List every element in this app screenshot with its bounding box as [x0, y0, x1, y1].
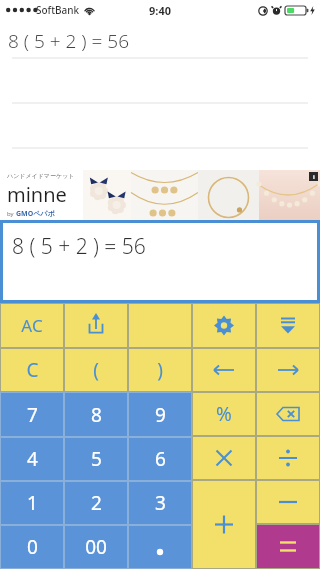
button[interactable]: Plus — [192, 480, 256, 569]
button[interactable]: 7 — [0, 392, 64, 437]
button[interactable]: 1 — [0, 481, 64, 525]
staticText: AC — [21, 314, 43, 337]
button[interactable]: Multiply — [192, 436, 256, 480]
button[interactable] — [128, 303, 192, 348]
button[interactable]: 5 — [64, 437, 128, 481]
staticText: SoftBank — [36, 3, 80, 17]
staticText: 1 — [27, 490, 38, 516]
staticText: i — [313, 173, 315, 181]
button[interactable]: ) — [128, 348, 192, 392]
button[interactable]: 4 — [0, 437, 64, 481]
button[interactable]: 6 — [128, 437, 192, 481]
button[interactable]: Left — [192, 348, 256, 392]
button[interactable]: 00 — [64, 525, 128, 569]
button[interactable]: 8 ( 5 + 2 ) = 56 — [3, 223, 317, 300]
button[interactable]: 2 — [64, 481, 128, 525]
staticText: 9 — [155, 402, 166, 428]
staticText: % — [216, 401, 232, 427]
button[interactable]: Divide — [256, 436, 320, 480]
button[interactable]: Hide keyboard — [256, 303, 320, 348]
button[interactable]: Share — [64, 303, 128, 348]
button[interactable]: AC — [0, 303, 64, 348]
button[interactable]: Right — [256, 348, 320, 392]
staticText: 6 — [155, 446, 166, 472]
button[interactable]: 0 — [0, 525, 64, 569]
button[interactable]: Settings — [192, 303, 256, 348]
button[interactable]: 8 — [64, 392, 128, 437]
button[interactable]: 3 — [128, 481, 192, 525]
staticText: 00 — [85, 534, 107, 560]
staticText: 9:40 — [149, 3, 171, 18]
button[interactable]: ( — [64, 348, 128, 392]
button[interactable]: Equals — [256, 524, 320, 569]
staticText: 3 — [155, 490, 166, 516]
staticText: 8 ( 5 + 2 ) = 56 — [8, 28, 130, 54]
staticText: C — [26, 357, 39, 383]
staticText: ) — [157, 357, 163, 383]
button[interactable]: % — [192, 392, 256, 436]
staticText: by — [7, 210, 16, 218]
button[interactable]: Minus — [256, 480, 320, 524]
staticText: ハンドメイドマーケット — [7, 172, 75, 180]
staticText: 0 — [27, 534, 38, 560]
button[interactable]: Decimal point — [128, 525, 192, 569]
staticText: GMOペパボ — [16, 209, 55, 219]
staticText: minne — [7, 181, 67, 208]
staticText: ( — [93, 357, 99, 383]
button[interactable]: 9 — [128, 392, 192, 437]
staticText: 5 — [91, 446, 102, 472]
staticText: 8 ( 5 + 2 ) = 56 — [12, 232, 146, 261]
staticText: 2 — [91, 490, 102, 516]
staticText: 4 — [27, 446, 38, 472]
staticText: 7 — [27, 402, 38, 428]
button[interactable]: Backspace — [256, 392, 320, 436]
staticText: 8 — [91, 402, 102, 428]
button[interactable]: Advertisement — [0, 170, 320, 220]
button[interactable]: C — [0, 348, 64, 392]
